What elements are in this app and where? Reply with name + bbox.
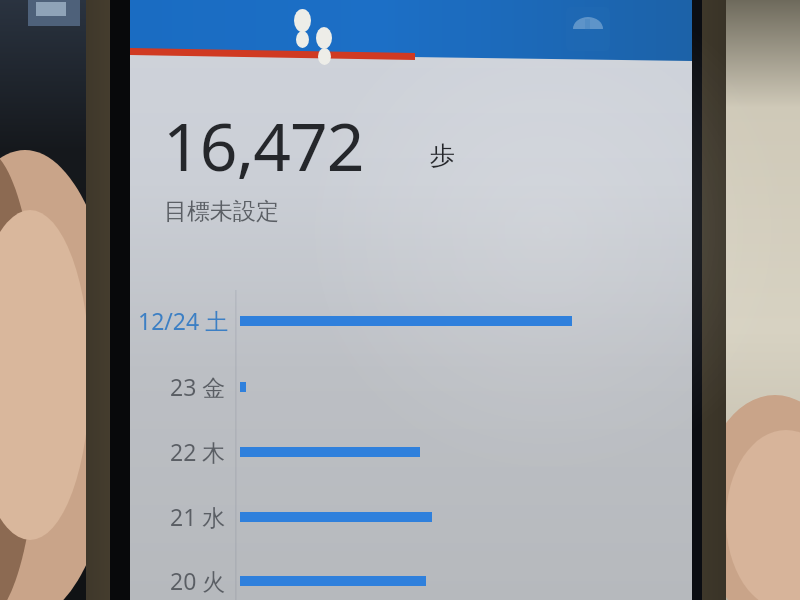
button[interactable]: 12/24 土 (130, 299, 692, 343)
button[interactable]: 20 火 (130, 559, 692, 600)
button[interactable]: 23 金 (130, 365, 692, 409)
staticText: 20 火 (170, 565, 226, 596)
button[interactable]: 22 木 (130, 430, 692, 474)
button[interactable]: 21 水 (130, 495, 692, 539)
staticText: 22 木 (170, 436, 226, 467)
button[interactable]: Steps tab (243, 0, 373, 62)
staticText: 21 水 (170, 501, 226, 532)
staticText: 16,472 (163, 100, 364, 190)
staticText: 23 金 (170, 371, 226, 402)
button[interactable]: Weight tab (519, 0, 649, 62)
staticText: 12/24 土 (138, 305, 229, 336)
staticText: 歩 (430, 140, 455, 171)
button[interactable]: 目標未設定 (164, 197, 279, 226)
